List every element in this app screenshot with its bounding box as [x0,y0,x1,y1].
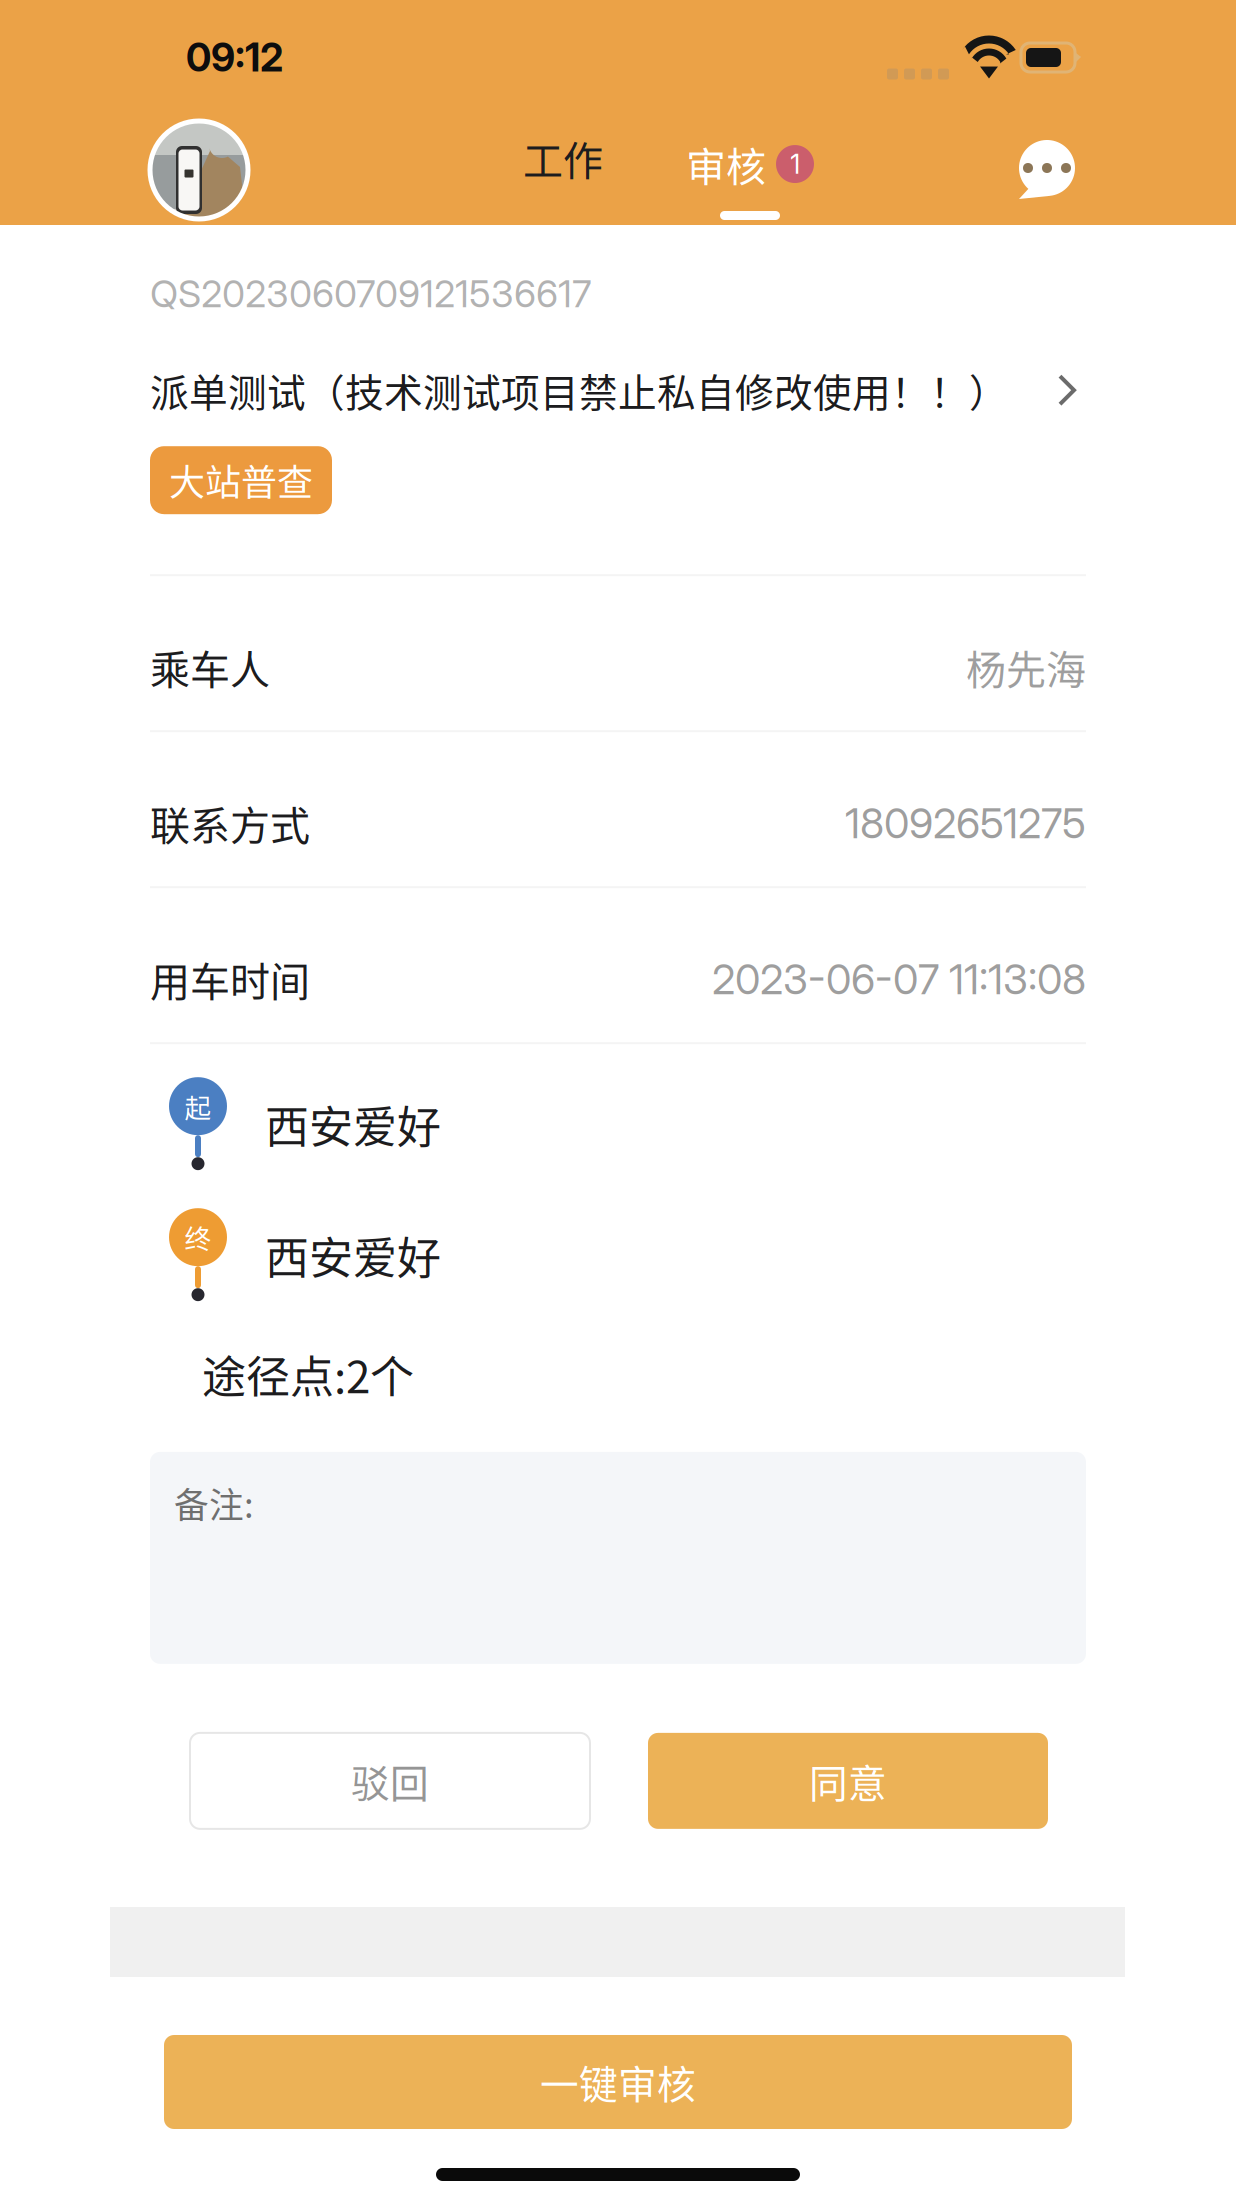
staticText: 联系方式 [150,794,310,852]
button[interactable]: 工作 [498,107,628,233]
staticText: 终 [184,1218,211,1256]
button[interactable]: 一键审核 [164,2035,1072,2129]
staticText: 西安爱好 [265,1092,441,1156]
staticText: 杨先海 [966,638,1086,696]
staticText: 18092651275 [845,798,1086,848]
button[interactable]: Messages [1016,107,1078,233]
staticText: 西安爱好 [265,1223,441,1287]
staticText: 1 [790,148,800,180]
button[interactable]: 同意 [648,1733,1048,1829]
button[interactable]: 审核 [652,107,848,233]
staticText: 09:12 [186,34,283,81]
button[interactable]: 驳回 [190,1733,590,1829]
staticText: 2023-06-07 11:13:08 [712,954,1086,1004]
staticText: 同意 [809,1753,887,1809]
staticText: 乘车人 [150,638,270,696]
staticText: 大站普查 [169,454,313,506]
button[interactable]: Profile [150,107,248,233]
staticText: 备注: [174,1478,254,1528]
staticText: 一键审核 [540,2054,696,2110]
button[interactable]: 派单测试（技术测试项目禁止私自修改使用！！） [150,364,1086,416]
staticText: 派单测试（技术测试项目禁止私自修改使用！！） [150,362,1008,418]
staticText: 起 [184,1087,211,1125]
staticText: 驳回 [351,1753,429,1809]
staticText: QS2023060709121536617 [150,271,592,316]
staticText: 工作 [523,129,603,187]
staticText: 审核 [686,135,766,193]
staticText: 途径点:2个 [202,1342,414,1406]
staticText: 用车时间 [150,950,310,1008]
